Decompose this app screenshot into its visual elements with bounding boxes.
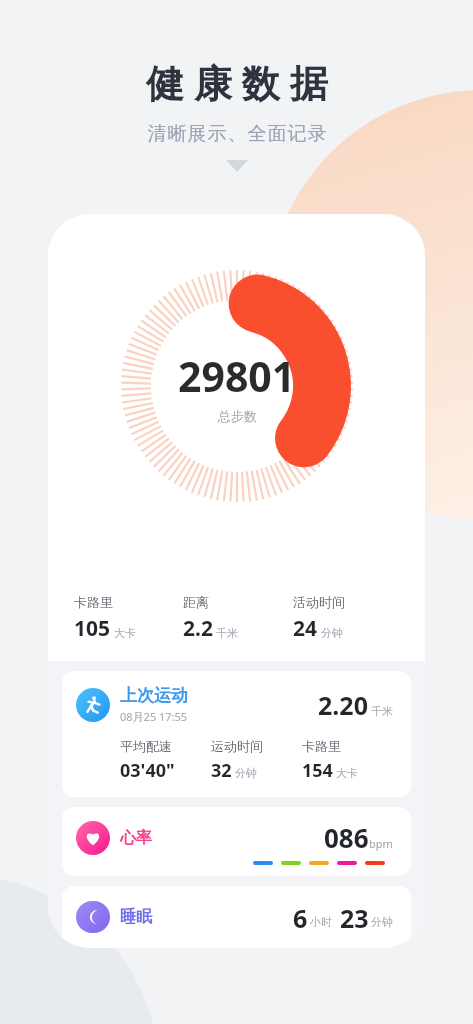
button[interactable]: 运动时间 [211, 738, 302, 783]
staticText: 活动时间 [293, 594, 345, 610]
staticText: 24 [293, 614, 318, 643]
staticText: 08月25 17:55 [120, 709, 188, 724]
other: run [76, 688, 110, 722]
staticText: 32 [211, 758, 232, 783]
staticText: 心率 [120, 828, 152, 848]
button[interactable]: heart [62, 807, 411, 876]
staticText: 距离 [183, 594, 209, 610]
staticText: 分钟 [371, 915, 393, 929]
staticText: 千米 [216, 626, 238, 640]
staticText: 6 [293, 901, 308, 933]
staticText: 清晰展示、全面记录 [147, 122, 327, 146]
button[interactable]: 卡路里 [74, 594, 183, 643]
staticText: 29801 [178, 348, 296, 404]
button[interactable]: 活动时间 [293, 594, 403, 643]
staticText: bpm [369, 836, 393, 851]
staticText: 运动时间 [211, 738, 263, 754]
staticText: 小时 [310, 915, 332, 929]
button[interactable]: 平均配速 [120, 738, 211, 783]
staticText: 总步数 [218, 408, 257, 424]
staticText: 卡路里 [302, 738, 341, 754]
other: heart [76, 821, 110, 855]
staticText: 大卡 [336, 766, 358, 780]
staticText: 2.2 [183, 614, 213, 643]
staticText: 23 [340, 901, 369, 933]
staticText: 分钟 [235, 766, 257, 780]
staticText: 卡路里 [74, 594, 113, 610]
staticText: 上次运动 [120, 685, 188, 706]
staticText: 千米 [371, 704, 393, 718]
other: moon [76, 901, 110, 933]
staticText: 分钟 [321, 626, 343, 640]
staticText: 086 [324, 820, 369, 855]
button[interactable]: moon [62, 886, 411, 948]
staticText: 2.20 [318, 688, 368, 722]
button[interactable]: run [62, 671, 411, 797]
button[interactable]: 距离 [183, 594, 293, 643]
button[interactable]: 卡路里 [302, 738, 393, 783]
staticText: 睡眠 [120, 907, 152, 927]
staticText: 105 [74, 614, 111, 643]
staticText: 平均配速 [120, 738, 172, 754]
staticText: 154 [302, 758, 333, 783]
staticText: 大卡 [114, 626, 136, 640]
staticText: 健 康 数 据 [146, 56, 328, 108]
staticText: 03'40" [120, 758, 175, 783]
